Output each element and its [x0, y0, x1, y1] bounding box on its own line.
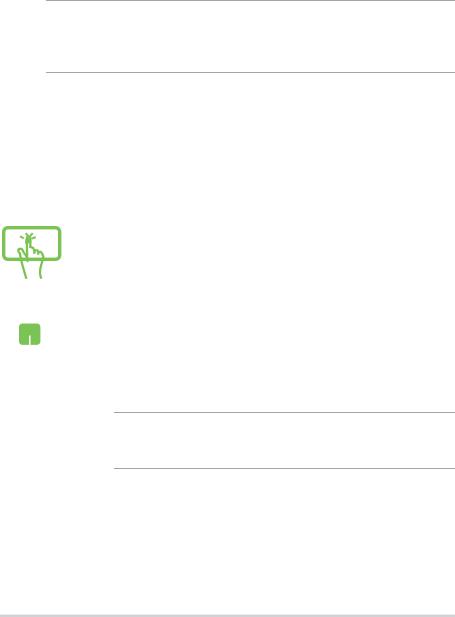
button[interactable]: Tap the touchpad: [2, 224, 64, 282]
button[interactable]: Touchpad: [19, 323, 40, 345]
